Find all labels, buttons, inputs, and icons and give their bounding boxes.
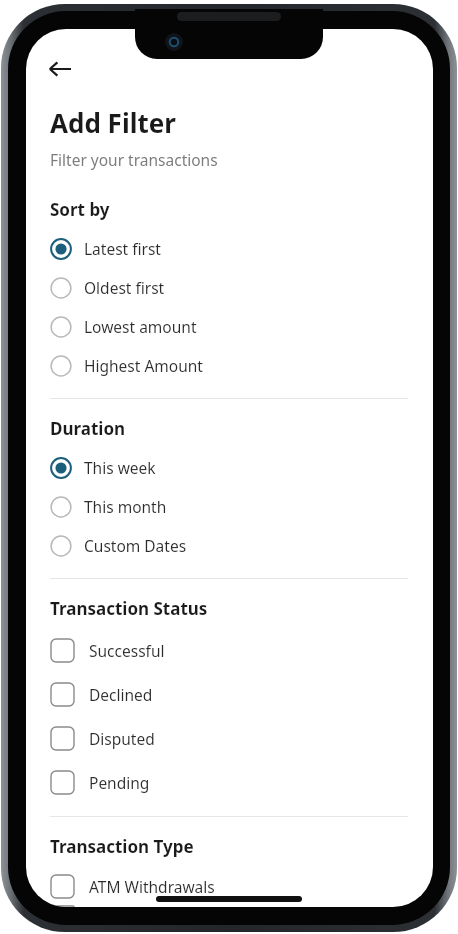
button[interactable]: Pending — [26, 760, 433, 804]
button[interactable]: Successful — [26, 628, 433, 672]
staticText: Successful — [89, 640, 165, 661]
button[interactable]: Disputed — [26, 716, 433, 760]
staticText: Add Filter — [50, 105, 176, 140]
button[interactable]: Custom Dates — [26, 526, 433, 565]
staticText: Declined — [89, 684, 153, 705]
staticText: Duration — [50, 417, 126, 440]
staticText: Transaction Status — [50, 597, 208, 620]
staticText: This week — [84, 457, 156, 478]
button[interactable]: Back — [38, 47, 82, 91]
button[interactable]: Oldest first — [26, 268, 433, 307]
staticText: Highest Amount — [84, 355, 203, 376]
button[interactable]: ATM Withdrawals — [26, 866, 433, 907]
button[interactable]: Declined — [26, 672, 433, 716]
staticText: ATM Withdrawals — [89, 876, 215, 897]
staticText: Custom Dates — [84, 535, 187, 556]
button[interactable]: Lowest amount — [26, 307, 433, 346]
button[interactable]: This month — [26, 487, 433, 526]
staticText: Pending — [89, 772, 150, 793]
staticText: Latest first — [84, 238, 161, 259]
staticText: Disputed — [89, 728, 155, 749]
button[interactable]: Latest first — [26, 229, 433, 268]
staticText: Filter your transactions — [50, 149, 218, 170]
button[interactable]: Highest Amount — [26, 346, 433, 385]
button[interactable]: This week — [26, 448, 433, 487]
staticText: Lowest amount — [84, 316, 197, 337]
staticText: Transaction Type — [50, 835, 194, 858]
staticText: Oldest first — [84, 277, 165, 298]
staticText: Sort by — [50, 198, 110, 221]
staticText: This month — [84, 496, 167, 517]
